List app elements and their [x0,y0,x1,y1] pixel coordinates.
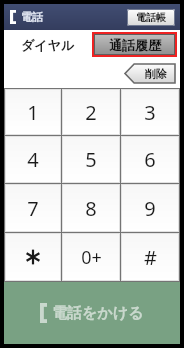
button[interactable]: 9 [121,184,179,232]
button[interactable]: 削除 [125,64,175,83]
button[interactable]: 通話履歴 [94,34,175,55]
button[interactable]: 電話帳 [127,9,175,26]
staticText: 0+ [81,245,102,270]
staticText: 電話帳 [136,11,166,24]
button[interactable]: 5 [62,136,120,183]
button[interactable]: 2 [62,89,120,135]
button[interactable]: 8 [62,184,120,232]
staticText: 7 [27,195,39,222]
button[interactable]: ダイヤル [4,30,92,59]
button[interactable]: 6 [121,136,179,183]
staticText: # [144,244,157,271]
staticText: 1 [27,99,39,126]
staticText: 6 [144,146,156,173]
button[interactable]: 0+ [62,233,120,281]
button[interactable]: 電話をかける [4,282,180,344]
button[interactable]: 3 [121,89,179,135]
staticText: 4 [27,146,39,173]
staticText: 2 [85,99,97,126]
staticText: 削除 [145,67,167,81]
button[interactable]: 1 [5,89,61,135]
staticText: 電話 [21,10,43,24]
button[interactable] [5,233,61,281]
staticText: 通話履歴 [109,37,161,53]
staticText: ダイヤル [21,37,75,53]
staticText: 9 [144,195,156,222]
button[interactable]: 7 [5,184,61,232]
staticText: 電話をかける [52,304,144,323]
staticText: 3 [144,99,156,126]
staticText: 5 [85,146,97,173]
staticText: 8 [85,195,97,222]
button[interactable]: 4 [5,136,61,183]
button[interactable]: # [121,233,179,281]
